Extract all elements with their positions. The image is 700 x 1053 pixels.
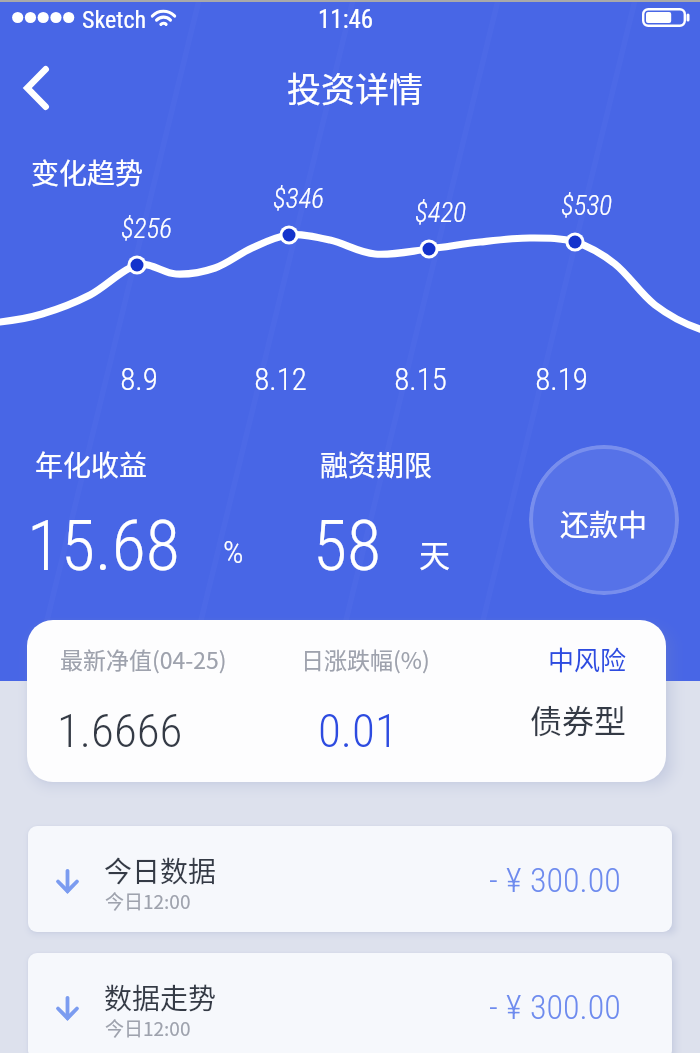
staticText: 8.15 xyxy=(394,361,447,397)
button[interactable]: 今日数据 xyxy=(28,826,672,932)
staticText: Sketch xyxy=(82,6,147,34)
staticText: 300.00 xyxy=(530,987,621,1027)
staticText: 债券型 xyxy=(530,696,627,742)
staticText: 天 xyxy=(419,531,450,576)
staticText: 数据走势 xyxy=(104,977,217,1018)
staticText: $420 xyxy=(415,197,466,229)
staticText: 今日12:00 xyxy=(105,1014,191,1042)
staticText: 投资详情 xyxy=(287,63,423,112)
button[interactable]: 还款中 xyxy=(529,445,679,595)
staticText: 11:46 xyxy=(318,5,374,34)
staticText: $256 xyxy=(121,213,172,245)
staticText: 0.01 xyxy=(318,703,398,758)
button[interactable]: Back xyxy=(7,59,65,117)
staticText: % xyxy=(223,533,244,571)
staticText: $346 xyxy=(273,183,324,215)
staticText: 8.12 xyxy=(254,361,307,397)
staticText: $530 xyxy=(561,190,612,222)
staticText: 300.00 xyxy=(530,860,621,900)
button[interactable]: 数据走势 xyxy=(28,953,672,1053)
staticText: 最新净值(04-25) xyxy=(60,642,227,675)
button[interactable]: 最新净值(04-25) xyxy=(27,620,666,782)
staticText: 今日12:00 xyxy=(105,887,191,915)
staticText: 58 xyxy=(313,505,382,587)
staticText: 8.19 xyxy=(535,361,588,397)
staticText: 中风险 xyxy=(548,640,627,678)
staticText: 1.6666 xyxy=(57,703,183,758)
staticText: 日涨跌幅(%) xyxy=(301,642,430,675)
staticText: - xyxy=(489,860,498,900)
staticText: 年化收益 xyxy=(35,444,148,485)
staticText: 今日数据 xyxy=(104,850,217,891)
staticText: - xyxy=(489,987,498,1027)
staticText: ¥ xyxy=(506,860,522,900)
staticText: 还款中 xyxy=(560,502,648,544)
staticText: 8.9 xyxy=(120,361,158,397)
staticText: 变化趋势 xyxy=(31,152,144,193)
staticText: ¥ xyxy=(506,987,522,1027)
staticText: 融资期限 xyxy=(320,444,433,485)
staticText: 15.68 xyxy=(27,505,180,587)
